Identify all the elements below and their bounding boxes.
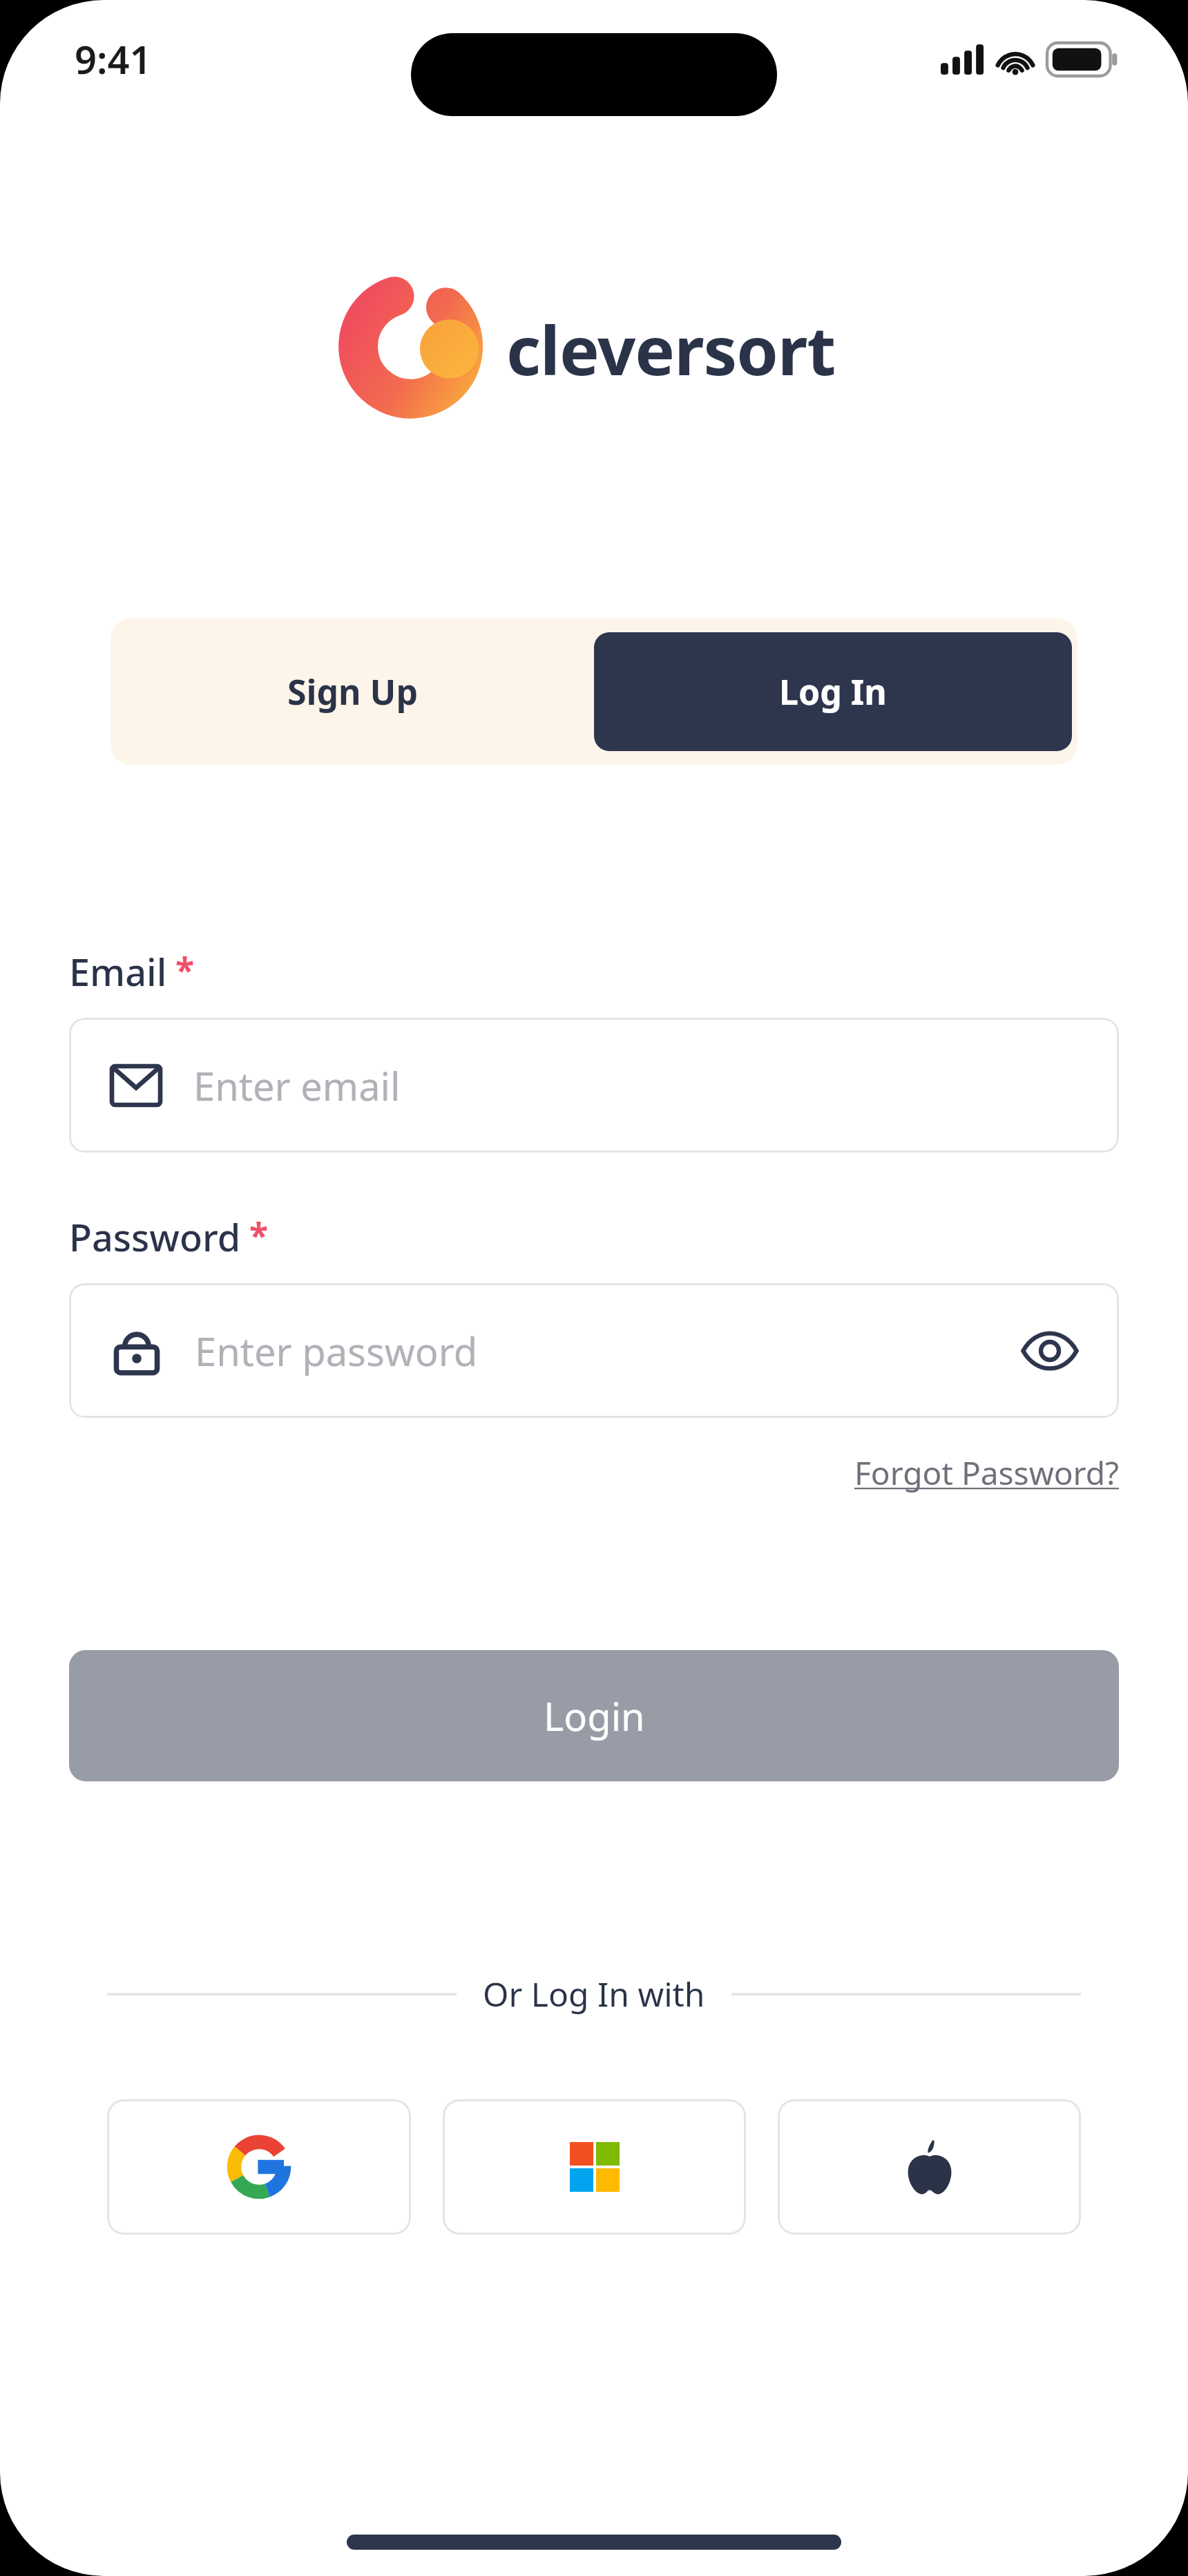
staticText: * (249, 1211, 269, 1258)
button[interactable]: Sign Up (111, 618, 594, 765)
staticText: * (175, 946, 195, 993)
staticText: cleversort (506, 303, 836, 395)
staticText: Or Log In with (483, 1971, 705, 2016)
staticText: Password (69, 1211, 241, 1262)
button[interactable]: Show password (1015, 1316, 1084, 1385)
button[interactable]: Sign in with Apple (778, 2099, 1081, 2235)
button[interactable]: Enter email (69, 1018, 1119, 1153)
staticText: Forgot Password? (854, 1451, 1119, 1495)
button[interactable]: Sign in with Google (107, 2099, 411, 2235)
button[interactable]: Login (69, 1650, 1119, 1781)
staticText: Email (69, 946, 167, 997)
button[interactable]: Forgot Password? (854, 1451, 1119, 1495)
button[interactable]: Enter password (69, 1283, 1119, 1418)
staticText: Login (544, 1689, 645, 1742)
staticText: Sign Up (287, 668, 418, 715)
staticText: Log In (779, 668, 887, 715)
staticText: Enter email (193, 1059, 401, 1112)
button[interactable]: Sign in with Microsoft (443, 2099, 746, 2235)
button[interactable]: Log In (594, 632, 1072, 751)
staticText: Enter password (195, 1325, 478, 1377)
staticText: 9:41 (75, 32, 152, 85)
